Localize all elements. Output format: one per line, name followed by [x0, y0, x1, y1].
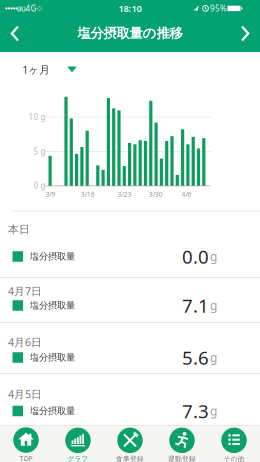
staticText: 3/23 — [117, 190, 131, 199]
staticText: 10 g — [28, 112, 45, 122]
staticText: 4/6 — [181, 190, 191, 199]
staticText: g — [210, 403, 217, 419]
staticText: 本日 — [8, 223, 30, 236]
button[interactable]: 食事登録 — [104, 427, 156, 462]
button[interactable]: 1ヶ月 — [22, 62, 77, 77]
staticText: 4月7日 — [8, 284, 42, 298]
staticText: 塩分摂取量 — [30, 300, 75, 311]
staticText: 7.3 — [182, 399, 209, 423]
staticText: 95% — [210, 3, 227, 14]
staticText: 塩分摂取量 — [30, 405, 75, 417]
staticText: 3/16 — [81, 190, 95, 199]
button[interactable]: 塩分摂取量 — [0, 342, 260, 372]
staticText: 食事登録 — [116, 455, 144, 462]
button[interactable]: 運動登録 — [156, 427, 208, 462]
staticText: 3/30 — [149, 190, 163, 199]
staticText: 塩分摂取量 — [30, 251, 75, 262]
staticText: 塩分摂取量の推移 — [77, 25, 182, 41]
staticText: 5 g — [33, 146, 45, 157]
staticText: g — [210, 297, 217, 313]
staticText: 0.0 — [182, 244, 209, 269]
button[interactable]: その他 — [208, 427, 260, 462]
staticText: 3/9 — [45, 190, 55, 199]
staticText: 0 g — [33, 180, 45, 191]
staticText: 運動登録 — [168, 455, 196, 462]
staticText: 1ヶ月 — [22, 62, 50, 77]
staticText: 7.1 — [182, 293, 209, 318]
staticText: 4G — [25, 3, 36, 14]
staticText: 4月6日 — [8, 335, 42, 349]
button[interactable] — [234, 24, 250, 42]
staticText: 18:10 — [118, 2, 141, 15]
staticText: 4月5日 — [8, 387, 42, 401]
staticText: その他 — [223, 455, 244, 462]
staticText: g — [210, 349, 217, 365]
staticText: au — [17, 3, 26, 14]
button[interactable] — [10, 24, 26, 42]
button[interactable]: TOP — [0, 427, 52, 462]
staticText: 塩分摂取量 — [30, 352, 75, 363]
staticText: TOP — [19, 454, 32, 462]
button[interactable]: 塩分摂取量 — [0, 290, 260, 320]
staticText: g — [210, 248, 217, 264]
button[interactable]: 塩分摂取量 — [0, 241, 260, 271]
staticText: 5.6 — [182, 345, 209, 370]
staticText: グラフ — [67, 455, 88, 462]
button[interactable]: グラフ — [52, 427, 104, 462]
button[interactable]: 塩分摂取量 — [0, 396, 260, 426]
